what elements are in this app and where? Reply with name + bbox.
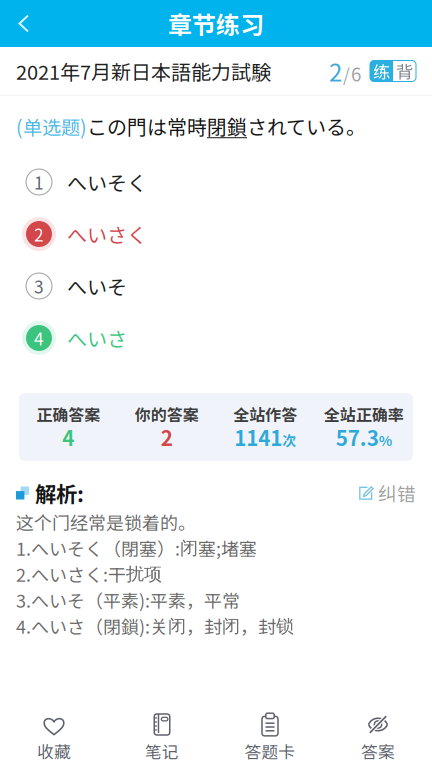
staticText: 4.へいさ（閉鎖):关闭，封闭，封锁 [16, 613, 294, 639]
staticText: へいさく [67, 219, 147, 248]
button[interactable]: 纠错 [358, 479, 416, 506]
staticText: (单选题) [16, 112, 87, 140]
staticText: 纠错 [378, 479, 416, 506]
staticText: 答案 [361, 739, 395, 763]
staticText: へいそ [67, 271, 127, 300]
staticText: 6 [351, 60, 361, 87]
staticText: 2 [161, 422, 173, 452]
staticText: 1.へいそく（閉塞）:闭塞;堵塞 [16, 535, 257, 561]
staticText: 4 [62, 422, 74, 452]
staticText: 4 [34, 325, 44, 351]
staticText: 背 [396, 58, 413, 84]
staticText: 解析: [35, 478, 84, 508]
staticText: / [343, 61, 350, 86]
staticText: へいさ [67, 323, 127, 352]
staticText: 答题卡 [244, 739, 295, 763]
button[interactable]: 练 [361, 60, 416, 81]
staticText: 次 [282, 430, 296, 450]
staticText: 正确答案 [36, 402, 100, 426]
staticText: 2 [34, 221, 44, 247]
staticText: 2 [329, 54, 342, 88]
staticText: 2021年7月新日本語能力試験 [16, 56, 271, 85]
staticText: 1141 [234, 422, 282, 452]
button[interactable]: Back [0, 0, 48, 47]
staticText: 閉鎖 [207, 111, 247, 140]
staticText: 收藏 [37, 739, 71, 763]
staticText: 2.へいさく:干扰项 [16, 561, 162, 587]
button[interactable]: 答案 [324, 694, 432, 768]
staticText: へいそく [67, 167, 147, 196]
button[interactable]: 1 [0, 156, 432, 208]
button[interactable]: 答题卡 [216, 694, 324, 768]
staticText: 3.へいそ（平素):平素，平常 [16, 587, 240, 613]
staticText: 练 [373, 58, 390, 84]
staticText: 你的答案 [135, 402, 199, 426]
staticText: 1 [34, 169, 44, 195]
staticText: 章节练习 [168, 6, 264, 41]
staticText: 3 [34, 273, 44, 299]
button[interactable]: 笔记 [108, 694, 216, 768]
staticText: 全站正确率 [324, 402, 404, 426]
staticText: 这个门经常是锁着的。 [16, 509, 196, 535]
staticText: 57.3 [336, 422, 379, 452]
staticText: この門は常時 [87, 111, 207, 140]
staticText: 全站作答 [233, 402, 297, 426]
button[interactable]: 3 [0, 260, 432, 312]
staticText: 笔记 [145, 739, 179, 763]
staticText: されている。 [247, 111, 366, 140]
button[interactable]: 收藏 [0, 694, 108, 768]
button[interactable]: 4 [0, 312, 432, 364]
button[interactable]: 2 [0, 208, 432, 260]
staticText: % [379, 430, 392, 450]
